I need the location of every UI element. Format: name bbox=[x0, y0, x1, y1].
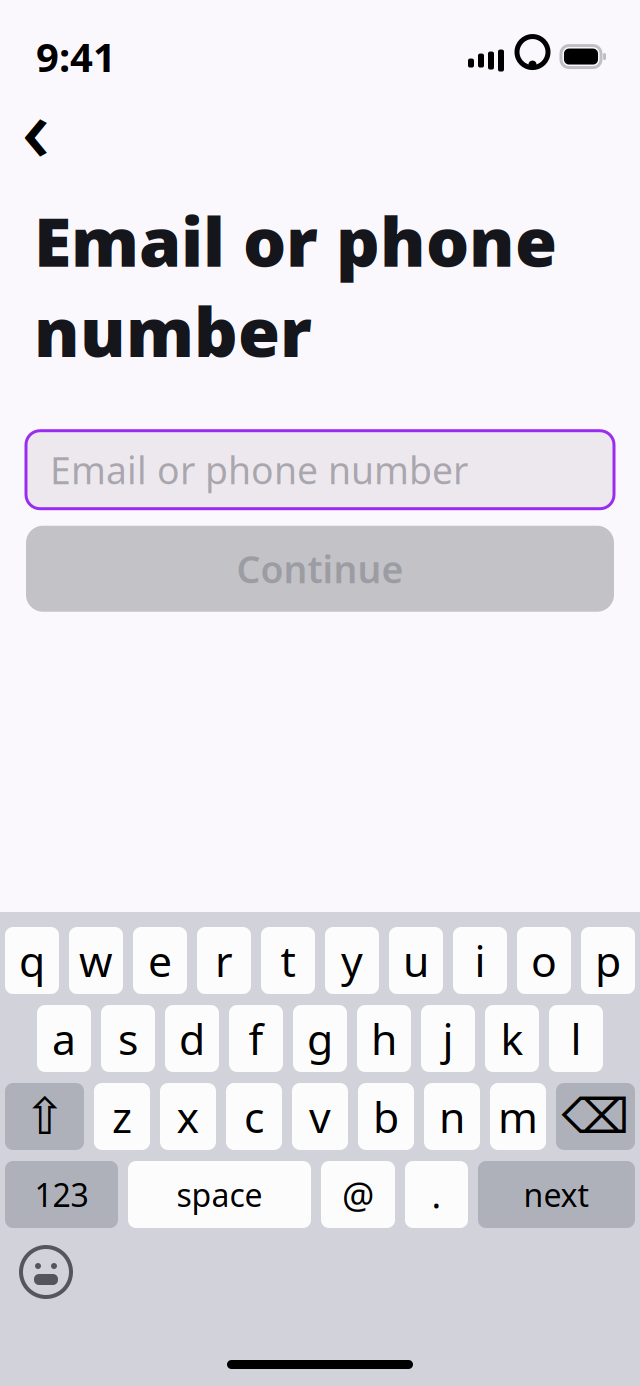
staticText: ⌫ bbox=[561, 1089, 629, 1144]
staticText: @ bbox=[342, 1171, 374, 1218]
button[interactable]: v bbox=[292, 1083, 348, 1150]
button[interactable]: i bbox=[453, 927, 507, 994]
button[interactable]: Emoji keyboard bbox=[18, 1244, 74, 1300]
button[interactable]: Shift bbox=[5, 1083, 84, 1150]
button[interactable]: x bbox=[160, 1083, 216, 1150]
staticText: h bbox=[371, 1010, 397, 1067]
staticText: b bbox=[373, 1088, 399, 1145]
staticText: 9:41 bbox=[36, 30, 116, 83]
button[interactable]: k bbox=[485, 1005, 539, 1072]
staticText: space bbox=[176, 1173, 262, 1216]
staticText: o bbox=[531, 932, 557, 989]
button[interactable]: c bbox=[226, 1083, 282, 1150]
staticText: r bbox=[215, 932, 233, 989]
button[interactable]: w bbox=[69, 927, 123, 994]
button[interactable]: s bbox=[101, 1005, 155, 1072]
staticText: k bbox=[500, 1010, 523, 1067]
staticText: z bbox=[112, 1088, 132, 1145]
button[interactable]: space bbox=[128, 1161, 311, 1228]
button[interactable]: d bbox=[165, 1005, 219, 1072]
staticText: p bbox=[595, 932, 621, 989]
staticText: l bbox=[570, 1010, 581, 1067]
staticText: g bbox=[307, 1010, 333, 1067]
button[interactable]: n bbox=[424, 1083, 480, 1150]
staticText: Continue bbox=[236, 544, 403, 593]
staticText: i bbox=[474, 932, 485, 989]
staticText: e bbox=[148, 932, 172, 989]
button[interactable]: a bbox=[37, 1005, 91, 1072]
button[interactable]: u bbox=[389, 927, 443, 994]
staticText: c bbox=[244, 1088, 264, 1145]
staticText: next bbox=[523, 1173, 589, 1216]
staticText: v bbox=[309, 1088, 331, 1145]
button[interactable]: Continue bbox=[26, 526, 614, 612]
button[interactable]: l bbox=[549, 1005, 603, 1072]
button[interactable]: Back bbox=[6, 97, 66, 157]
staticText: w bbox=[79, 932, 113, 989]
staticText: Email or phone number bbox=[50, 445, 468, 494]
staticText: n bbox=[439, 1088, 465, 1145]
staticText: t bbox=[280, 932, 295, 989]
staticText: j bbox=[442, 1010, 453, 1067]
button[interactable]: t bbox=[261, 927, 315, 994]
staticText: . bbox=[431, 1171, 441, 1218]
staticText: 123 bbox=[34, 1173, 88, 1216]
button[interactable]: o bbox=[517, 927, 571, 994]
button[interactable]: j bbox=[421, 1005, 475, 1072]
button[interactable]: r bbox=[197, 927, 251, 994]
staticText: Email or phone number bbox=[34, 195, 557, 376]
staticText: y bbox=[341, 932, 363, 989]
staticText: ‹ bbox=[21, 69, 50, 186]
button[interactable]: z bbox=[94, 1083, 150, 1150]
staticText: m bbox=[498, 1088, 538, 1145]
button[interactable]: y bbox=[325, 927, 379, 994]
staticText: d bbox=[179, 1010, 205, 1067]
staticText: f bbox=[248, 1010, 263, 1067]
button[interactable]: b bbox=[358, 1083, 414, 1150]
staticText: s bbox=[118, 1010, 138, 1067]
button[interactable]: g bbox=[293, 1005, 347, 1072]
staticText: q bbox=[19, 932, 45, 989]
button[interactable]: Delete bbox=[556, 1083, 635, 1150]
button[interactable]: Email or phone number bbox=[26, 431, 614, 509]
button[interactable]: f bbox=[229, 1005, 283, 1072]
staticText: ⇧ bbox=[23, 1088, 65, 1145]
button[interactable]: @ bbox=[321, 1161, 395, 1228]
button[interactable]: next bbox=[478, 1161, 635, 1228]
button[interactable]: p bbox=[581, 927, 635, 994]
staticText: a bbox=[52, 1010, 76, 1067]
button[interactable]: . bbox=[405, 1161, 468, 1228]
button[interactable]: e bbox=[133, 927, 187, 994]
staticText: u bbox=[403, 932, 429, 989]
button[interactable]: 123 bbox=[5, 1161, 118, 1228]
button[interactable]: q bbox=[5, 927, 59, 994]
button[interactable]: m bbox=[490, 1083, 546, 1150]
staticText: x bbox=[176, 1088, 199, 1145]
button[interactable]: h bbox=[357, 1005, 411, 1072]
